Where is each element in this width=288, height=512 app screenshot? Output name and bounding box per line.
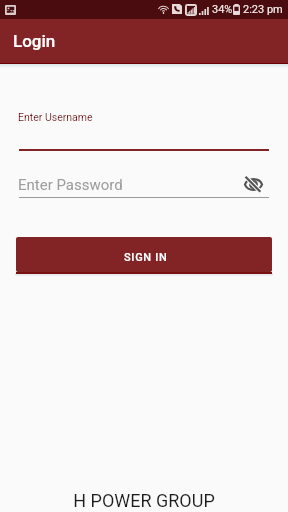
staticText: 2:23 pm xyxy=(243,3,283,16)
staticText: Login xyxy=(13,31,56,51)
staticText: H POWER GROUP xyxy=(0,490,288,511)
button[interactable]: SIGN IN xyxy=(16,237,272,272)
staticText: SIGN IN xyxy=(124,251,168,264)
button[interactable]: Enter Username xyxy=(0,104,288,152)
button[interactable]: Show password xyxy=(241,172,265,196)
staticText: 34% xyxy=(212,3,233,16)
staticText: Enter Password xyxy=(18,176,123,194)
staticText: Enter Username xyxy=(18,111,93,123)
